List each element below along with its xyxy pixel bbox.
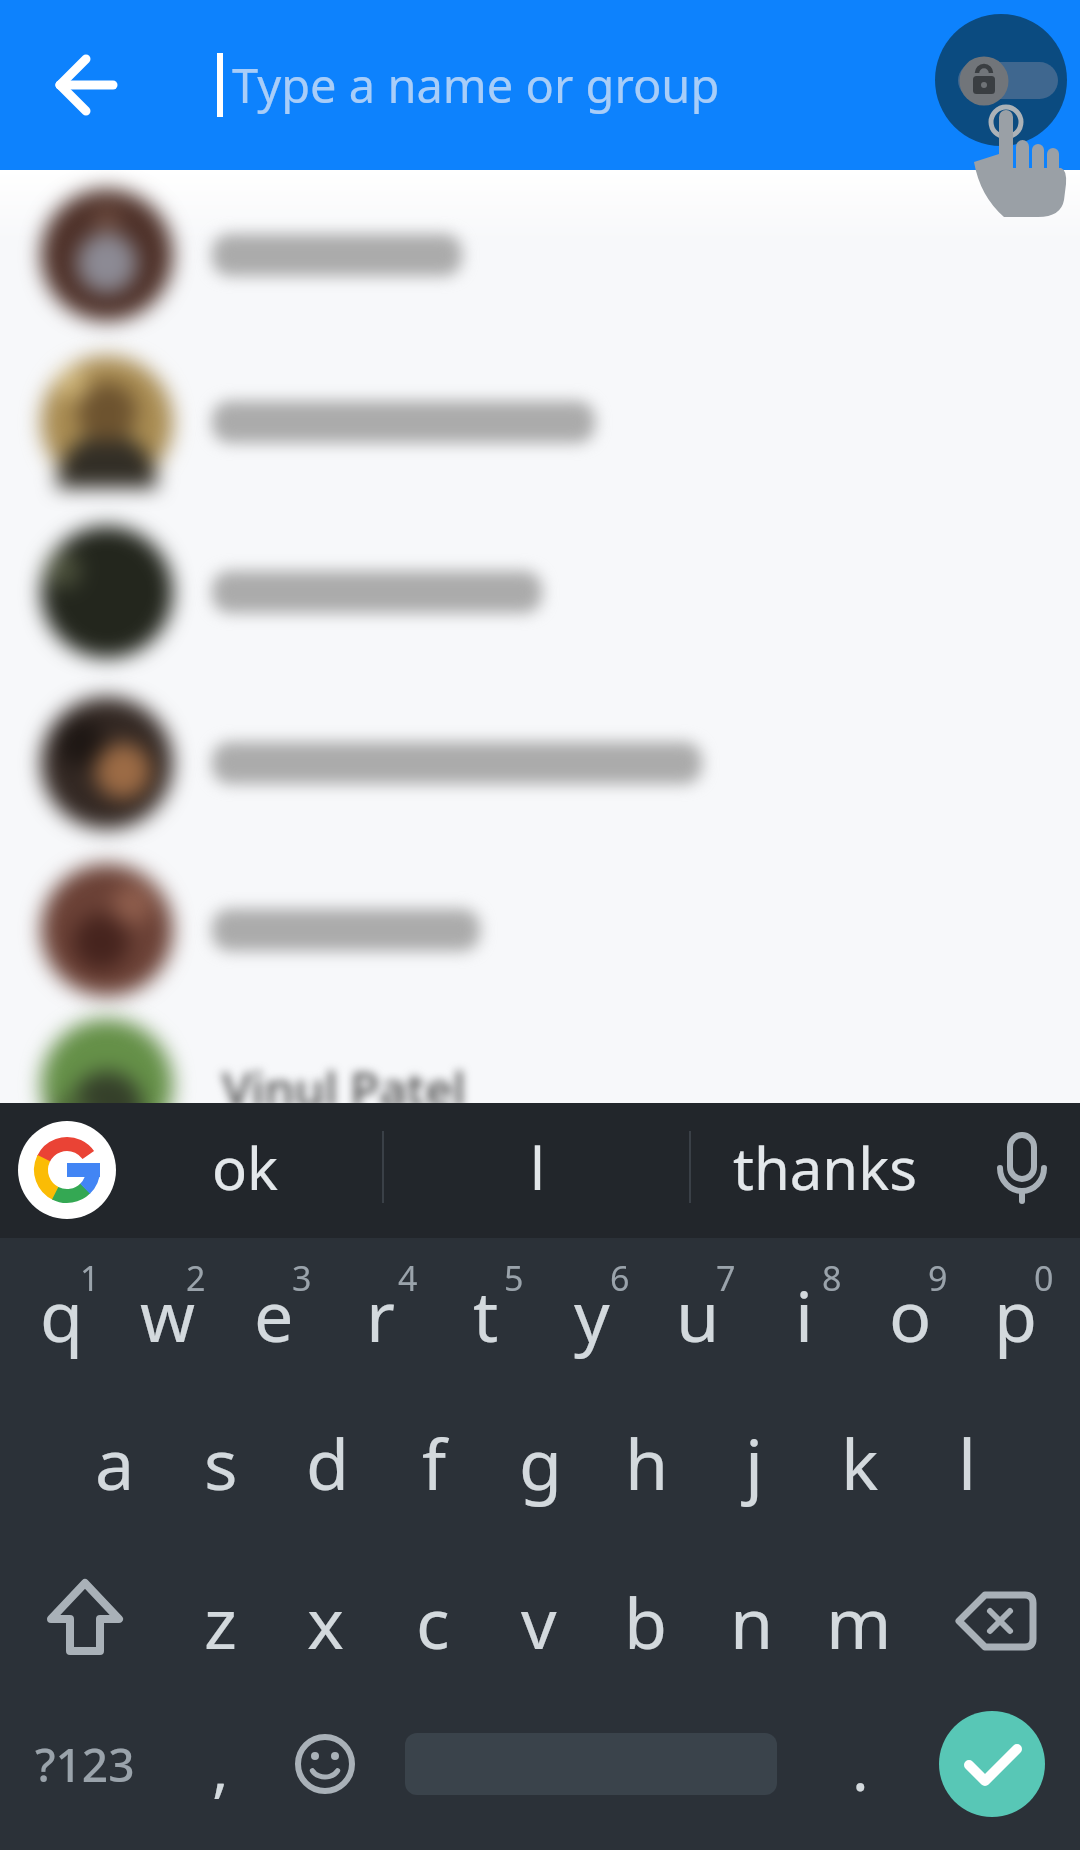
staticText: v [521,1574,557,1669]
button[interactable] [20,526,1060,658]
button[interactable]: k [810,1392,910,1532]
staticText: h [625,1415,669,1510]
button[interactable]: n [702,1551,802,1691]
staticText: q [40,1267,84,1362]
button[interactable] [939,1711,1045,1817]
button[interactable]: l [917,1392,1017,1532]
button[interactable] [35,35,135,135]
staticText: Type a name or group [232,53,720,117]
button[interactable]: s [171,1392,271,1532]
staticText: 3 [292,1255,312,1301]
button[interactable]: l [412,1102,662,1232]
button[interactable] [20,864,1060,996]
button[interactable]: i [754,1244,854,1384]
button[interactable] [17,1120,117,1220]
button[interactable]: . [820,1707,900,1827]
staticText: f [422,1415,447,1510]
button[interactable]: d [278,1392,378,1532]
button[interactable]: Type a name or group [232,0,832,170]
staticText: x [307,1574,345,1669]
button[interactable]: w [118,1244,218,1384]
staticText: 2 [186,1255,206,1301]
button[interactable]: o [860,1244,960,1384]
button[interactable]: z [170,1551,270,1691]
staticText: 1 [80,1255,100,1301]
button[interactable] [20,189,1060,321]
staticText: 0 [1034,1255,1054,1301]
button[interactable]: f [384,1392,484,1532]
button[interactable]: c [383,1551,483,1691]
staticText: r [366,1267,395,1362]
staticText: l [958,1415,977,1510]
staticText: 5 [504,1255,524,1301]
staticText: a [95,1415,135,1510]
button[interactable]: v [489,1551,589,1691]
staticText: o [889,1267,932,1362]
button[interactable]: h [597,1392,697,1532]
button[interactable]: ok [120,1102,370,1232]
staticText: t [473,1267,499,1362]
button[interactable] [935,14,1080,224]
staticText: Vinul Patel [222,1056,466,1121]
staticText: ?123 [35,1733,135,1796]
button[interactable]: thanks [700,1102,950,1232]
button[interactable]: e [224,1244,324,1384]
button[interactable]: r [330,1244,430,1384]
staticText: . [852,1725,869,1809]
staticText: u [676,1267,720,1362]
staticText: w [140,1267,196,1362]
staticText: y [574,1267,610,1362]
staticText: i [795,1267,814,1362]
staticText: 6 [610,1255,630,1301]
button[interactable]: p [966,1244,1066,1384]
staticText: 8 [822,1255,842,1301]
button[interactable]: g [491,1392,591,1532]
staticText: c [416,1574,450,1669]
button[interactable] [933,1561,1053,1681]
button[interactable] [20,356,1060,488]
button[interactable]: a [65,1392,165,1532]
staticText: l [530,1128,545,1207]
button[interactable]: q [12,1244,112,1384]
staticText: 9 [928,1255,948,1301]
staticText: m [826,1574,892,1669]
button[interactable]: t [436,1244,536,1384]
staticText: ok [212,1128,279,1207]
staticText: thanks [733,1128,917,1207]
button[interactable] [270,1709,380,1819]
staticText: b [624,1574,668,1669]
button[interactable]: u [648,1244,748,1384]
button[interactable] [22,1561,142,1681]
staticText: p [994,1267,1038,1362]
button[interactable]: b [596,1551,696,1691]
staticText: 4 [398,1255,418,1301]
staticText: , [212,1725,229,1809]
staticText: d [306,1415,350,1510]
staticText: g [519,1415,563,1510]
button[interactable] [20,697,1060,829]
button[interactable]: ?123 [10,1704,160,1824]
button[interactable]: y [542,1244,642,1384]
button[interactable]: , [180,1707,260,1827]
staticText: e [254,1267,294,1362]
staticText: z [204,1574,237,1669]
button[interactable]: m [809,1551,909,1691]
staticText: n [730,1574,774,1669]
staticText: 7 [716,1255,736,1301]
staticText: s [204,1415,238,1510]
button[interactable] [972,1117,1072,1217]
staticText: j [745,1415,764,1510]
staticText: k [841,1415,879,1510]
button[interactable]: j [704,1392,804,1532]
button[interactable]: x [276,1551,376,1691]
